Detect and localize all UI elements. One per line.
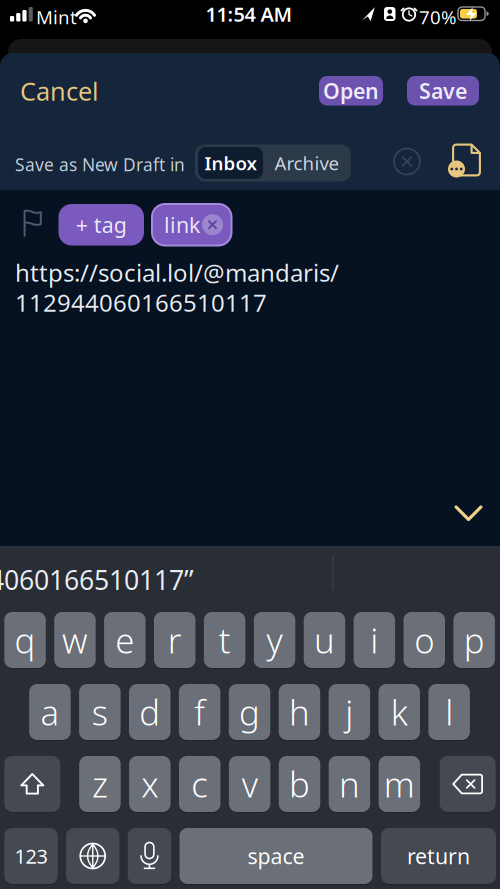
button[interactable]: p (453, 611, 495, 669)
staticText: space (247, 842, 304, 870)
button[interactable]: Save (407, 76, 479, 105)
staticText: i (370, 617, 378, 663)
staticText: link (164, 211, 200, 239)
staticText: Inbox (204, 151, 256, 175)
button[interactable]: Next keyboard (66, 827, 119, 885)
staticText: f (194, 689, 205, 735)
staticText: https://social.lol/@mandaris/ (15, 256, 339, 288)
button[interactable]: f (179, 683, 220, 741)
staticText: q (15, 617, 36, 663)
button[interactable]: Clear (394, 148, 420, 174)
staticText: d (139, 689, 160, 735)
button[interactable]: Flag (23, 209, 42, 236)
staticText: l (445, 689, 453, 735)
button[interactable]: z (79, 755, 121, 813)
button[interactable]: Delete (440, 755, 496, 813)
button[interactable]: d (129, 683, 170, 741)
button[interactable]: n (329, 755, 370, 813)
staticText: Cancel (20, 74, 99, 108)
button[interactable]: 4060166510117” (0, 562, 194, 597)
staticText: e (115, 617, 134, 663)
button[interactable]: r (154, 611, 195, 669)
staticText: j (345, 689, 353, 735)
staticText: + tag (76, 211, 127, 239)
button[interactable]: c (179, 755, 220, 813)
button[interactable]: Archive (263, 147, 351, 179)
button[interactable]: Shift (4, 755, 60, 813)
button[interactable]: o (403, 611, 445, 669)
button[interactable]: h (279, 683, 320, 741)
button[interactable]: return (381, 827, 496, 885)
staticText: s (92, 689, 108, 735)
staticText: 123 (15, 843, 48, 869)
staticText: v (242, 761, 258, 807)
staticText: g (239, 689, 260, 735)
button[interactable]: j (329, 683, 370, 741)
button[interactable]: Open (319, 76, 383, 105)
staticText: y (267, 617, 283, 663)
staticText: o (414, 617, 434, 663)
button[interactable]: link (152, 204, 231, 245)
staticText: Mint (36, 4, 77, 29)
staticText: Save (419, 77, 467, 105)
button[interactable]: Dismiss keyboard (454, 505, 482, 522)
staticText: h (289, 689, 310, 735)
staticText: Save as New Draft in (15, 153, 185, 176)
button[interactable]: v (229, 755, 270, 813)
button[interactable]: Cancel (20, 76, 110, 106)
button[interactable]: q (4, 611, 46, 669)
staticText: b (289, 761, 310, 807)
staticText: u (314, 617, 335, 663)
staticText: Open (323, 77, 379, 105)
button[interactable]: Dictate (128, 827, 171, 885)
staticText: z (92, 761, 108, 807)
staticText: r (168, 617, 182, 663)
button[interactable]: a (29, 683, 71, 741)
staticText: 11:54 AM (205, 1, 292, 27)
staticText: 4060166510117” (0, 562, 194, 597)
staticText: p (464, 617, 485, 663)
button[interactable]: 123 (4, 827, 58, 885)
button[interactable]: l (428, 683, 470, 741)
button[interactable]: m (379, 755, 420, 813)
button[interactable]: i (354, 611, 395, 669)
staticText: m (384, 761, 415, 807)
button[interactable]: s (79, 683, 121, 741)
staticText: k (391, 689, 408, 735)
staticText: 70% (419, 4, 457, 29)
button[interactable]: y (254, 611, 295, 669)
staticText: a (40, 689, 59, 735)
staticText: 112944060166510117 (15, 286, 267, 318)
button[interactable]: Inbox (198, 147, 263, 179)
button[interactable]: New draft (452, 143, 481, 176)
button[interactable]: t (204, 611, 245, 669)
button[interactable]: g (229, 683, 270, 741)
button[interactable]: k (378, 683, 420, 741)
button[interactable]: + tag (58, 204, 144, 245)
staticText: Archive (274, 151, 339, 175)
button[interactable]: u (304, 611, 345, 669)
staticText: x (141, 761, 158, 807)
button[interactable]: space (179, 827, 372, 885)
button[interactable]: b (279, 755, 320, 813)
button[interactable]: w (54, 611, 96, 669)
staticText: w (62, 617, 88, 663)
staticText: return (407, 842, 470, 870)
staticText: n (339, 761, 360, 807)
button[interactable]: e (104, 611, 146, 669)
staticText: c (191, 761, 208, 807)
staticText: t (219, 617, 231, 663)
button[interactable]: x (129, 755, 171, 813)
